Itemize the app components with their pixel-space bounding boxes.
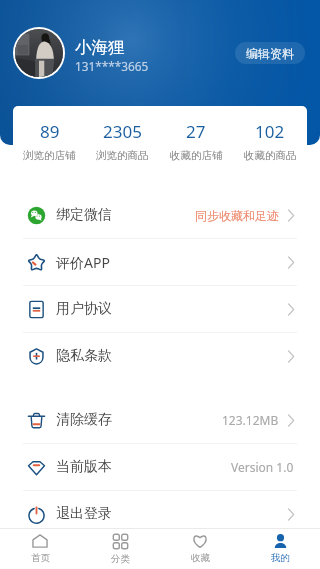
staticText: 首页 — [31, 552, 50, 564]
button[interactable]: 隐私条款 — [0, 333, 320, 379]
button[interactable]: 27 — [159, 120, 233, 162]
button[interactable]: 102 — [233, 120, 307, 162]
staticText: 绑定微信 — [56, 206, 112, 224]
staticText: 收藏 — [191, 552, 210, 564]
staticText: Version 1.0 — [231, 459, 294, 475]
button[interactable]: Favorites — [160, 529, 240, 569]
button[interactable]: 评价APP — [0, 239, 320, 286]
staticText: 2305 — [103, 120, 142, 143]
button[interactable]: 当前版本 — [0, 444, 320, 491]
staticText: 浏览的店铺 — [23, 149, 76, 162]
staticText: 收藏的商品 — [244, 149, 297, 162]
staticText: 退出登录 — [56, 505, 112, 523]
button[interactable]: 清除缓存 — [0, 397, 320, 444]
staticText: 评价APP — [56, 253, 110, 272]
staticText: 清除缓存 — [56, 411, 112, 429]
staticText: 编辑资料 — [246, 46, 294, 61]
staticText: 用户协议 — [56, 300, 112, 318]
button[interactable]: Home — [0, 529, 80, 569]
staticText: 收藏的店铺 — [170, 149, 223, 162]
staticText: 浏览的商品 — [96, 149, 149, 162]
button[interactable]: 退出登录 — [0, 491, 320, 537]
staticText: 小海狸 — [75, 37, 125, 58]
staticText: 102 — [255, 120, 285, 143]
staticText: 131****3665 — [75, 58, 149, 74]
staticText: 我的 — [271, 552, 290, 564]
button[interactable]: 2305 — [86, 120, 159, 162]
staticText: 分类 — [111, 553, 130, 565]
button[interactable]: 用户协议 — [0, 286, 320, 333]
button[interactable]: Profile — [240, 529, 320, 569]
staticText: 123.12MB — [222, 412, 279, 428]
staticText: 27 — [186, 120, 206, 143]
staticText: 89 — [40, 120, 60, 143]
staticText: 隐私条款 — [56, 347, 112, 365]
button[interactable]: 绑定微信 — [0, 192, 320, 239]
staticText: 同步收藏和足迹 — [195, 208, 279, 223]
staticText: 当前版本 — [56, 458, 112, 476]
button[interactable]: 89 — [13, 120, 86, 162]
button[interactable]: Categories — [80, 529, 160, 569]
button[interactable]: 编辑资料 — [235, 42, 305, 64]
